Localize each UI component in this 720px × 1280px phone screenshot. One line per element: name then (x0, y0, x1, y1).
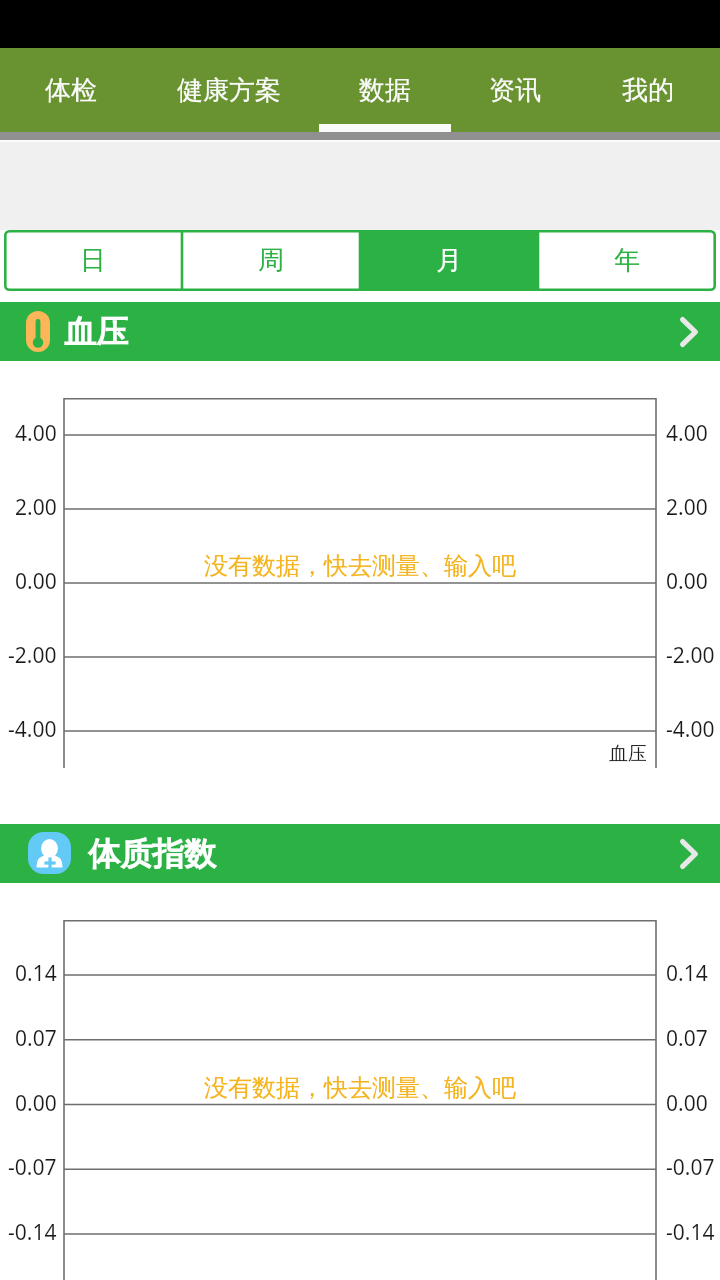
staticText: 4.00 (15, 419, 57, 448)
button[interactable]: 健康方案 (142, 48, 316, 132)
staticText: 4.00 (666, 419, 708, 448)
button[interactable]: 我的 (576, 48, 720, 132)
staticText: 0.00 (15, 1089, 57, 1118)
staticText: 月 (436, 244, 462, 277)
staticText: -0.07 (666, 1153, 715, 1182)
staticText: 日 (80, 244, 106, 277)
staticText: 0.07 (15, 1024, 57, 1053)
staticText: -4.00 (8, 715, 57, 744)
staticText: -0.14 (8, 1218, 57, 1247)
staticText: 血压 (609, 742, 647, 766)
button[interactable]: 年 (538, 230, 716, 291)
staticText: -2.00 (666, 641, 715, 670)
button[interactable]: 数据 (316, 48, 454, 132)
staticText: 我的 (622, 74, 674, 107)
staticText: 体检 (45, 74, 97, 107)
staticText: 周 (258, 244, 284, 277)
staticText: 血压 (64, 312, 128, 352)
staticText: -4.00 (666, 715, 715, 744)
button[interactable]: Open 血压 (658, 302, 720, 361)
staticText: 2.00 (666, 493, 708, 522)
staticText: 年 (614, 244, 640, 277)
staticText: 0.14 (15, 959, 57, 988)
staticText: 数据 (359, 74, 411, 107)
staticText: 0.00 (15, 567, 57, 596)
staticText: 资讯 (489, 74, 541, 107)
button[interactable]: 资讯 (454, 48, 576, 132)
button[interactable]: 血压 (0, 302, 720, 361)
button[interactable]: Open 体质指数 (658, 824, 720, 883)
staticText: -0.14 (666, 1218, 715, 1247)
staticText: 0.00 (666, 567, 708, 596)
button[interactable]: 月 (360, 230, 538, 291)
staticText: 没有数据，快去测量、输入吧 (204, 1073, 516, 1103)
button[interactable]: 体检 (0, 48, 142, 132)
button[interactable]: 体质指数 (0, 824, 720, 883)
staticText: 0.00 (666, 1089, 708, 1118)
staticText: -0.07 (8, 1153, 57, 1182)
button[interactable]: 日 (4, 230, 182, 291)
staticText: 2.00 (15, 493, 57, 522)
staticText: 没有数据，快去测量、输入吧 (204, 551, 516, 581)
staticText: 0.07 (666, 1024, 708, 1053)
staticText: 0.14 (666, 959, 708, 988)
staticText: 体质指数 (88, 834, 216, 874)
button[interactable]: 周 (182, 230, 360, 291)
staticText: -2.00 (8, 641, 57, 670)
staticText: 健康方案 (177, 74, 281, 107)
